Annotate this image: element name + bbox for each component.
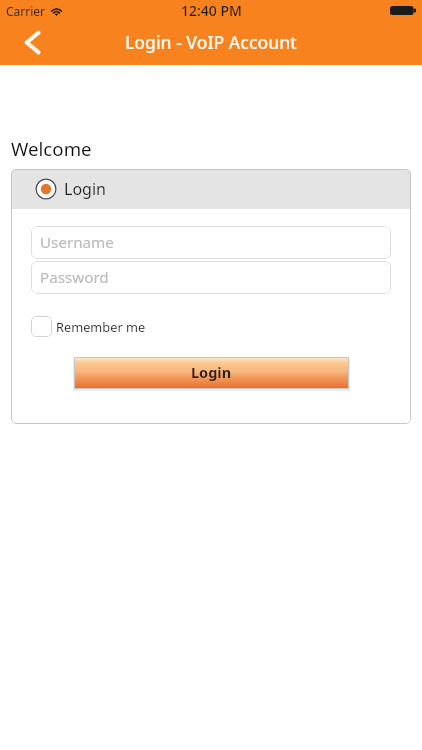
button[interactable]: Login	[74, 357, 349, 389]
staticText: Carrier	[6, 3, 46, 19]
button[interactable]: Username	[31, 226, 391, 259]
button[interactable]: Login	[11, 169, 411, 209]
staticText: Password	[40, 267, 109, 288]
staticText: 12:40 PM	[181, 1, 242, 20]
staticText: Login	[191, 362, 232, 382]
staticText: Login - VoIP Account	[125, 30, 297, 54]
button[interactable]: Password	[31, 261, 391, 294]
button[interactable]: Remember me	[31, 316, 146, 337]
staticText: Remember me	[56, 318, 146, 335]
button[interactable]: Back	[0, 21, 46, 65]
staticText: Username	[40, 232, 114, 253]
staticText: Welcome	[11, 136, 92, 161]
staticText: Login	[64, 178, 106, 200]
